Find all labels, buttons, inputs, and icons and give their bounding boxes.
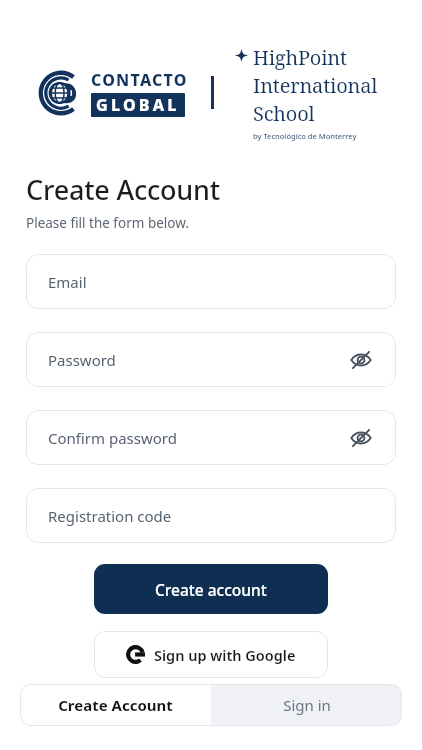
staticText: Registration code bbox=[48, 506, 172, 526]
button[interactable]: Show password bbox=[348, 347, 374, 373]
button[interactable]: Sign up with Google bbox=[94, 631, 328, 678]
staticText: Sign in bbox=[283, 695, 331, 715]
staticText: by Tecnológico de Monterrey bbox=[253, 131, 357, 141]
button[interactable]: Create Account bbox=[20, 684, 211, 726]
staticText: Create Account bbox=[58, 695, 173, 715]
button[interactable]: Show password bbox=[348, 425, 374, 451]
staticText: International bbox=[253, 72, 378, 99]
staticText: Password bbox=[48, 350, 116, 370]
button[interactable]: Sign in bbox=[211, 684, 402, 726]
staticText: CONTACTO bbox=[91, 69, 188, 91]
staticText: Confirm password bbox=[48, 428, 177, 448]
button[interactable]: Password bbox=[26, 332, 396, 387]
staticText: School bbox=[253, 100, 315, 127]
button[interactable]: Email bbox=[26, 254, 396, 309]
staticText: HighPoint bbox=[253, 44, 347, 71]
staticText: Email bbox=[48, 272, 87, 292]
button[interactable]: Registration code bbox=[26, 488, 396, 543]
staticText: Please fill the form below. bbox=[26, 214, 189, 232]
staticText: Create account bbox=[155, 579, 267, 600]
staticText: Sign up with Google bbox=[154, 645, 296, 665]
staticText: Create Account bbox=[26, 171, 220, 208]
button[interactable]: Create account bbox=[94, 564, 328, 614]
button[interactable]: Confirm password bbox=[26, 410, 396, 465]
staticText: GLOBAL bbox=[96, 94, 180, 116]
